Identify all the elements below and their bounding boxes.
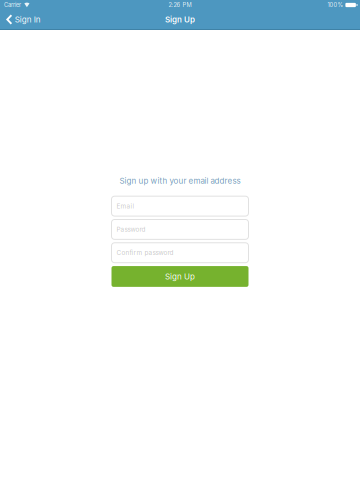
button[interactable]: Email	[111, 196, 248, 216]
staticText: Confirm password	[116, 249, 173, 257]
staticText: Carrier	[4, 1, 21, 8]
staticText: 2:26 PM	[168, 1, 191, 8]
staticText: Email	[116, 202, 134, 210]
button[interactable]: Sign Up	[111, 266, 248, 287]
button[interactable]: Confirm password	[111, 243, 248, 263]
staticText: Sign Up	[165, 272, 195, 281]
staticText: Sign Up	[165, 15, 195, 24]
staticText: Sign up with your email address	[119, 176, 240, 186]
staticText: 100%	[327, 1, 343, 8]
button[interactable]: Password	[111, 219, 248, 239]
button[interactable]: Sign In	[0, 11, 46, 28]
staticText: Sign In	[15, 15, 41, 24]
staticText: Password	[116, 226, 145, 233]
